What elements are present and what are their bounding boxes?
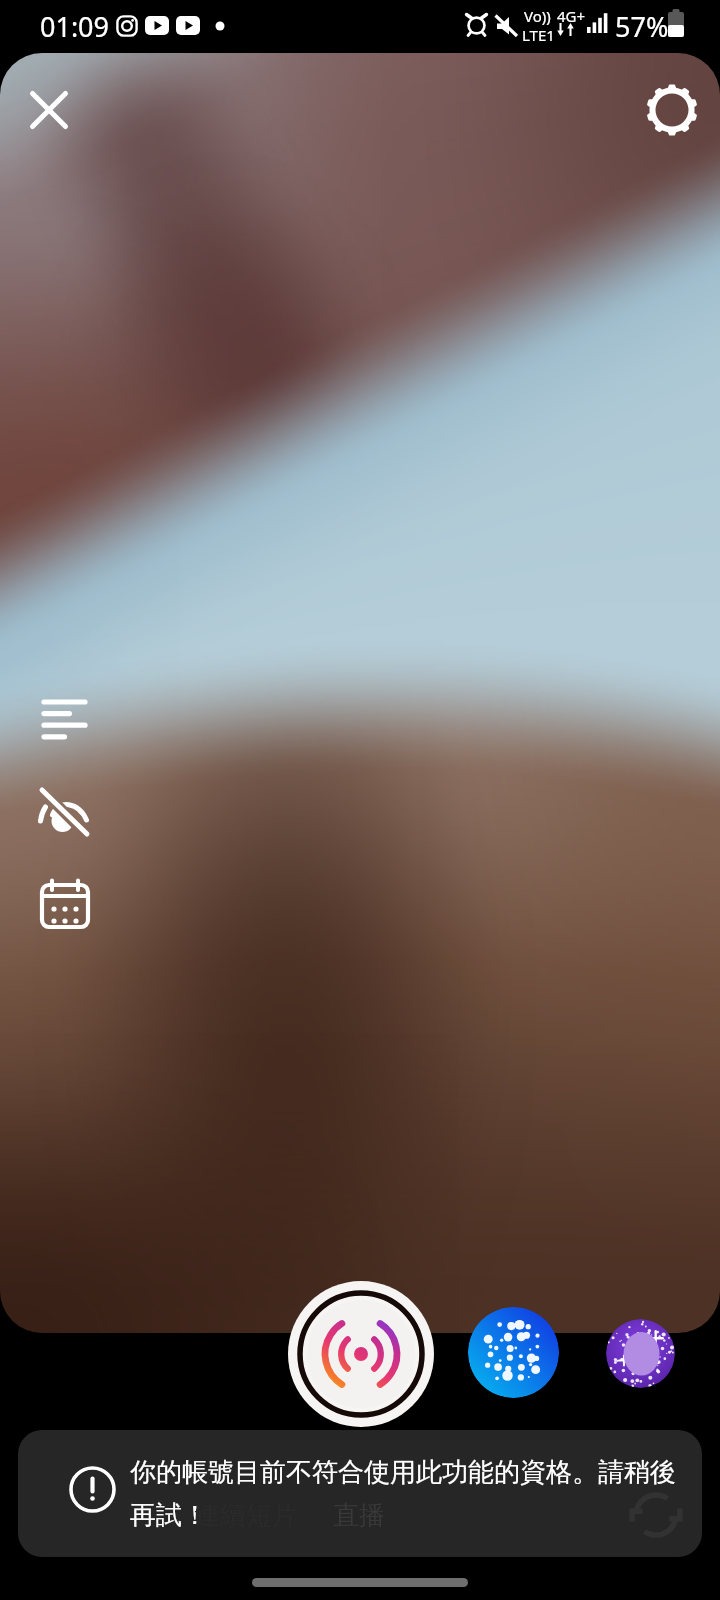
button[interactable]: Sparkle effect bbox=[468, 1307, 559, 1398]
button[interactable]: 連續短片 bbox=[194, 1499, 298, 1532]
button[interactable]: 直播 bbox=[333, 1499, 385, 1532]
button[interactable]: Add a title bbox=[33, 666, 95, 728]
button[interactable]: 你的帳號目前不符合使用此功能的資格。請稍後再試！ bbox=[18, 1430, 702, 1557]
staticText: Vo)) bbox=[524, 6, 551, 26]
staticText: 57% bbox=[615, 8, 669, 45]
button[interactable]: Schedule live bbox=[33, 853, 95, 915]
button[interactable]: Galaxy effect bbox=[606, 1319, 675, 1388]
button[interactable]: Close bbox=[21, 82, 77, 138]
staticText: 01:09 bbox=[40, 8, 110, 45]
staticText: 4G+ bbox=[557, 6, 586, 26]
button[interactable]: Hide from bbox=[33, 759, 95, 821]
button[interactable]: Settings bbox=[644, 82, 700, 138]
button[interactable]: Flip camera bbox=[624, 1483, 688, 1547]
staticText: LTE1 bbox=[522, 25, 555, 45]
staticText: 你的帳號目前不符合使用此功能的資格。請稍後再試！ bbox=[130, 1456, 696, 1532]
button[interactable]: Start live video bbox=[288, 1281, 434, 1427]
